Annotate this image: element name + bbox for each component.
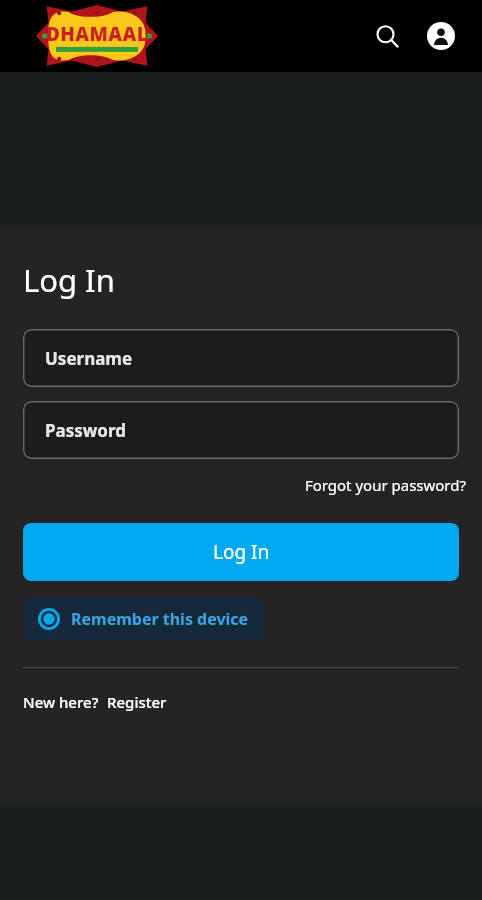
staticText: Log In	[23, 259, 115, 301]
staticText: Password	[45, 419, 126, 442]
button[interactable]: Forgot your password?	[288, 469, 482, 501]
button[interactable]: Dhamaal home	[34, 3, 160, 69]
button[interactable]: Search	[364, 13, 410, 59]
button[interactable]: Log In	[23, 523, 459, 581]
staticText: Log In	[213, 539, 270, 565]
button[interactable]: Account	[418, 13, 464, 59]
staticText: Username	[45, 347, 133, 370]
button[interactable]: Username	[23, 329, 459, 387]
staticText: New here?	[23, 692, 99, 712]
button[interactable]: Register	[107, 692, 167, 712]
button[interactable]: Password	[23, 401, 459, 459]
staticText: Remember this device	[71, 608, 249, 630]
staticText: DHAMAAL	[46, 21, 149, 47]
button[interactable]: Remember this device	[23, 597, 264, 641]
